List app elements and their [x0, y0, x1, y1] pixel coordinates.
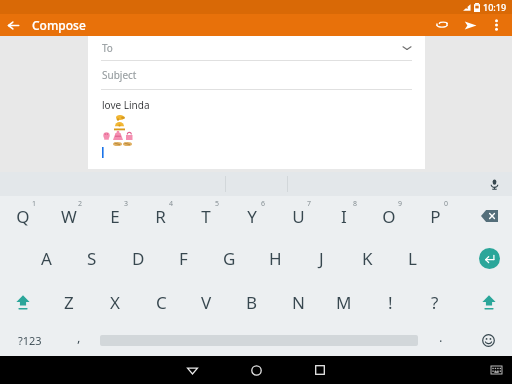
- button[interactable]: Backspace: [466, 196, 512, 236]
- staticText: 2: [78, 199, 83, 209]
- button[interactable]: Shift: [466, 280, 512, 324]
- staticText: T: [201, 205, 211, 228]
- staticText: 4: [169, 199, 174, 209]
- staticText: 1: [32, 199, 37, 209]
- button[interactable]: Shift: [0, 280, 46, 324]
- staticText: ?123: [18, 333, 42, 348]
- staticText: 6: [261, 199, 266, 209]
- button[interactable]: More options: [484, 14, 508, 36]
- button[interactable]: A: [23, 236, 69, 280]
- button[interactable]: ?123: [2, 324, 58, 356]
- button[interactable]: .: [418, 324, 464, 356]
- staticText: 5: [215, 199, 220, 209]
- staticText: Q: [16, 205, 30, 228]
- button[interactable]: B: [229, 280, 275, 324]
- button[interactable]: Subject: [88, 61, 425, 89]
- staticText: G: [223, 247, 236, 270]
- staticText: 3: [124, 199, 129, 209]
- staticText: J: [319, 247, 324, 270]
- staticText: M: [336, 291, 352, 314]
- button[interactable]: Z: [46, 280, 92, 324]
- button[interactable]: Recent apps: [308, 356, 332, 384]
- staticText: F: [179, 247, 188, 270]
- staticText: love Linda: [102, 98, 150, 112]
- staticText: A: [41, 247, 52, 270]
- staticText: ,: [77, 328, 81, 346]
- button[interactable]: M: [321, 280, 367, 324]
- staticText: N: [292, 291, 305, 314]
- button[interactable]: Space: [100, 324, 418, 356]
- staticText: To: [102, 41, 113, 55]
- button[interactable]: G: [206, 236, 252, 280]
- staticText: P: [430, 205, 441, 228]
- button[interactable]: R: [137, 196, 183, 236]
- button[interactable]: Home: [244, 356, 268, 384]
- button[interactable]: F: [160, 236, 206, 280]
- button[interactable]: ,: [58, 324, 100, 356]
- button[interactable]: X: [92, 280, 138, 324]
- button[interactable]: I: [321, 196, 367, 236]
- staticText: ?: [431, 291, 439, 314]
- button[interactable]: K: [344, 236, 390, 280]
- button[interactable]: Attach file: [429, 14, 455, 36]
- button[interactable]: Enter: [466, 236, 512, 280]
- staticText: !: [388, 291, 393, 314]
- button[interactable]: C: [138, 280, 184, 324]
- staticText: Y: [247, 205, 257, 228]
- button[interactable]: J: [298, 236, 344, 280]
- button[interactable]: D: [115, 236, 161, 280]
- staticText: L: [408, 247, 417, 270]
- staticText: Compose: [32, 17, 86, 33]
- button[interactable]: Emoji: [464, 324, 512, 356]
- button[interactable]: Y: [229, 196, 275, 236]
- staticText: C: [156, 291, 167, 314]
- button[interactable]: L: [389, 236, 435, 280]
- button[interactable]: To: [88, 36, 425, 60]
- button[interactable]: S: [69, 236, 115, 280]
- button[interactable]: Send: [457, 14, 483, 36]
- staticText: U: [292, 205, 305, 228]
- staticText: 8: [353, 199, 358, 209]
- button[interactable]: ?: [412, 280, 458, 324]
- button[interactable]: E: [92, 196, 138, 236]
- staticText: 7: [307, 199, 312, 209]
- button[interactable]: T: [183, 196, 229, 236]
- button[interactable]: Back: [180, 356, 204, 384]
- button[interactable]: U: [275, 196, 321, 236]
- button[interactable]: N: [275, 280, 321, 324]
- staticText: K: [362, 247, 373, 270]
- staticText: D: [132, 247, 145, 270]
- staticText: 9: [398, 199, 403, 209]
- staticText: X: [110, 291, 120, 314]
- button[interactable]: !: [367, 280, 413, 324]
- staticText: S: [87, 247, 97, 270]
- button[interactable]: O: [366, 196, 412, 236]
- staticText: B: [246, 291, 258, 314]
- staticText: V: [201, 291, 212, 314]
- button[interactable]: P: [412, 196, 458, 236]
- button[interactable]: V: [183, 280, 229, 324]
- staticText: .: [439, 328, 443, 346]
- staticText: Z: [64, 291, 74, 314]
- staticText: O: [382, 205, 396, 228]
- staticText: E: [110, 205, 120, 228]
- staticText: H: [269, 247, 282, 270]
- staticText: 0: [444, 199, 449, 209]
- button[interactable]: W: [46, 196, 92, 236]
- button[interactable]: love Linda: [88, 90, 425, 169]
- button[interactable]: H: [252, 236, 298, 280]
- button[interactable]: Voice input: [484, 174, 504, 194]
- button[interactable]: Switch keyboard: [486, 360, 506, 380]
- staticText: I: [341, 205, 347, 228]
- staticText: 10:19: [483, 1, 507, 13]
- staticText: W: [61, 205, 77, 228]
- staticText: Subject: [102, 68, 137, 82]
- button[interactable]: Back: [0, 14, 26, 36]
- staticText: R: [155, 205, 166, 228]
- button[interactable]: Q: [0, 196, 46, 236]
